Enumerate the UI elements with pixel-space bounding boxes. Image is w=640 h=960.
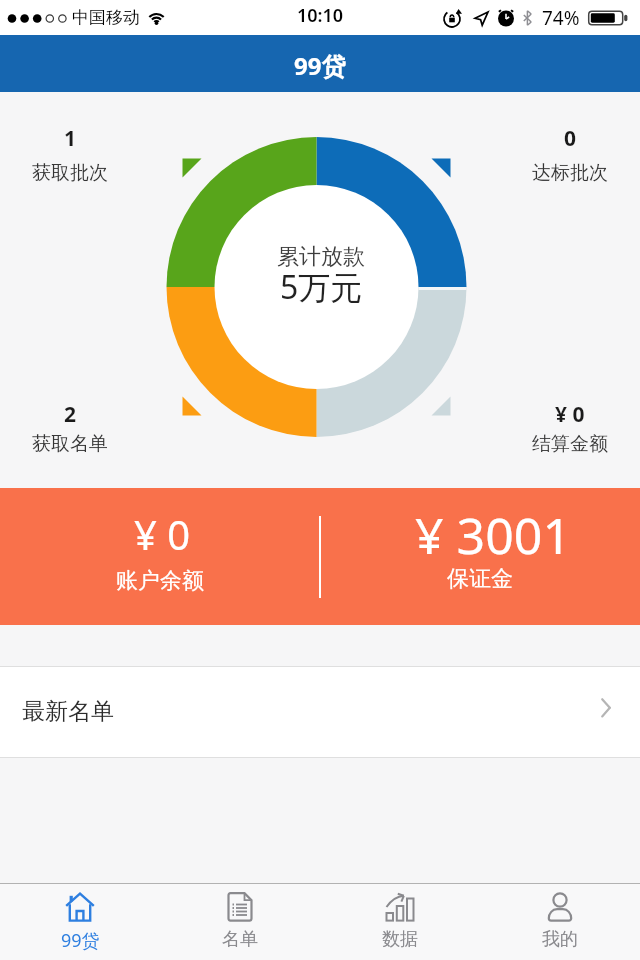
staticText: ¥ 0 [134, 507, 191, 561]
staticText: 2 [64, 400, 77, 429]
staticText: 99贷 [61, 928, 100, 953]
staticText: ¥ 0 [555, 400, 585, 429]
staticText: 数据 [382, 928, 418, 951]
staticText: 保证金 [447, 565, 513, 593]
staticText: 结算金额 [532, 432, 608, 456]
staticText: 1 [64, 124, 77, 153]
staticText: 获取名单 [32, 432, 108, 456]
staticText: 累计放款 [277, 243, 365, 271]
staticText: 10:10 [297, 3, 344, 28]
staticText: 74% [542, 5, 580, 31]
staticText: 0 [564, 124, 577, 153]
button[interactable]: 99贷 [0, 884, 160, 960]
staticText: ¥ 3001 [415, 501, 571, 569]
button[interactable]: 数据 [320, 884, 480, 960]
staticText: 最新名单 [22, 697, 114, 726]
staticText: 获取批次 [32, 161, 108, 185]
button[interactable]: 我的 [480, 884, 640, 960]
staticText: 中国移动 [72, 7, 140, 28]
staticText: 名单 [222, 928, 258, 951]
staticText: 99贷 [294, 49, 346, 82]
button[interactable]: ¥ 3001 [320, 488, 640, 625]
staticText: 达标批次 [532, 161, 608, 185]
button[interactable]: 最新名单 [0, 666, 640, 758]
staticText: 账户余额 [116, 567, 204, 595]
staticText: 我的 [542, 928, 578, 951]
staticText: 5万元 [280, 265, 363, 309]
button[interactable]: 名单 [160, 884, 320, 960]
button[interactable]: ¥ 0 [0, 488, 320, 625]
